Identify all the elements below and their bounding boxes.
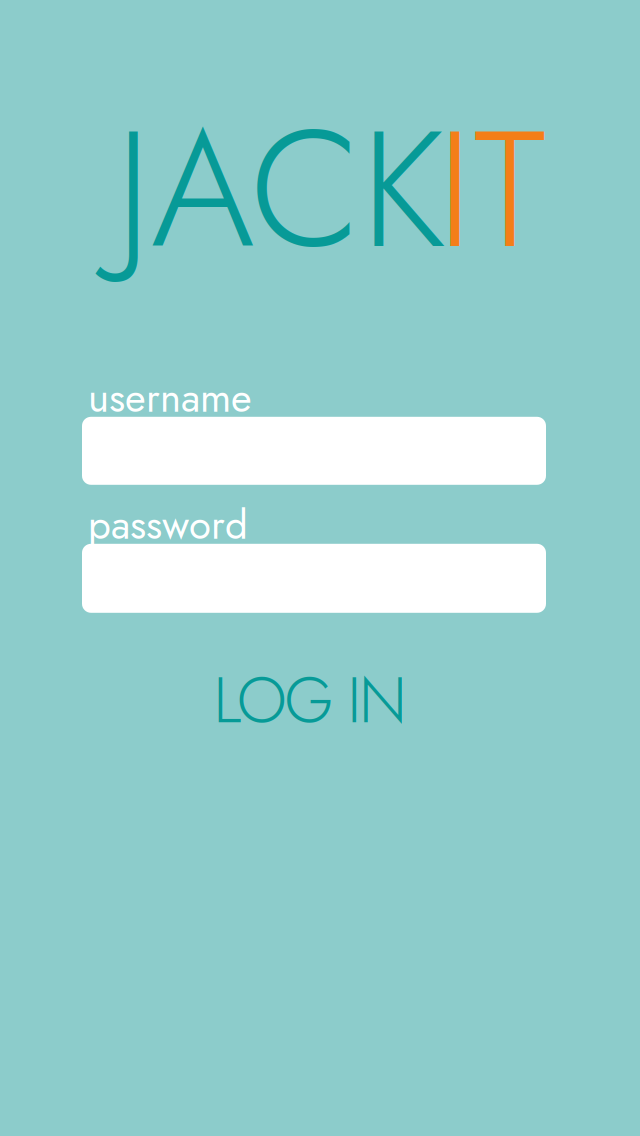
button[interactable]: username	[82, 417, 546, 485]
button[interactable]: LOG IN	[180, 655, 440, 745]
button[interactable]: password	[82, 544, 546, 613]
staticText: IT	[437, 72, 546, 307]
staticText: JACK	[115, 72, 446, 307]
staticText: LOG IN	[213, 654, 407, 746]
staticText: password	[88, 496, 248, 554]
staticText: username	[88, 369, 252, 427]
